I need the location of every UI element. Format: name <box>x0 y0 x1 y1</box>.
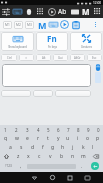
button[interactable]: Run macro <box>59 19 70 30</box>
staticText: Ab <box>58 7 67 16</box>
button[interactable]: Clipboard <box>70 19 81 30</box>
button[interactable]: q <box>0 134 11 143</box>
staticText: g <box>51 144 55 151</box>
button[interactable]: 2 <box>11 126 22 134</box>
staticText: e <box>26 135 29 142</box>
button[interactable]: Recent apps <box>61 172 79 183</box>
button[interactable]: 8 <box>73 126 83 134</box>
button[interactable]: b <box>56 152 67 161</box>
button[interactable]: g <box>48 143 58 152</box>
button[interactable]: s <box>16 143 27 152</box>
staticText: i <box>77 135 79 142</box>
button[interactable]: r <box>33 134 43 143</box>
button[interactable]: Alt <box>36 54 51 61</box>
button[interactable]: k <box>78 143 88 152</box>
button[interactable]: More options <box>90 19 101 30</box>
button[interactable]: Numeric pad <box>35 6 46 17</box>
staticText: Ctrl <box>7 56 12 60</box>
staticText: r <box>37 135 40 142</box>
staticText: t <box>47 135 49 142</box>
button[interactable]: 6 <box>53 126 63 134</box>
button[interactable]: Macro <box>37 19 48 30</box>
button[interactable]: Text input <box>2 64 91 87</box>
button[interactable]: AltGr <box>70 54 85 61</box>
staticText: j <box>72 144 74 151</box>
button[interactable] <box>55 90 91 97</box>
button[interactable]: n <box>67 152 78 161</box>
button[interactable]: Keypad <box>92 6 103 17</box>
staticText: 2 <box>15 127 18 133</box>
button[interactable]: t <box>43 134 53 143</box>
button[interactable]: x <box>23 152 34 161</box>
button[interactable]: 3 <box>22 126 33 134</box>
button[interactable]: v <box>45 152 56 161</box>
button[interactable]: M2 <box>14 21 23 29</box>
button[interactable]: j <box>68 143 78 152</box>
staticText: o <box>86 135 90 142</box>
button[interactable]: ⇧ <box>19 54 34 61</box>
button[interactable]: ?123 <box>1 161 16 171</box>
button[interactable]: Text <box>57 6 68 17</box>
button[interactable]: Keyboard <box>48 19 59 30</box>
button[interactable]: Gestures <box>70 32 102 51</box>
staticText: ⇧ <box>25 56 28 59</box>
button[interactable]: z <box>13 152 23 161</box>
staticText: Gui <box>58 56 63 60</box>
button[interactable]: Enter <box>87 161 102 171</box>
staticText: Fn keys <box>48 45 57 49</box>
staticText: 4 <box>37 127 40 133</box>
button[interactable]: Ctrl <box>1 54 17 61</box>
button[interactable]: 4 <box>33 126 43 134</box>
button[interactable]: i <box>73 134 83 143</box>
button[interactable]: Screen <box>69 6 80 17</box>
button[interactable]: 5 <box>43 126 53 134</box>
button[interactable]: y <box>53 134 63 143</box>
button[interactable]: 0 <box>93 126 103 134</box>
button[interactable]: e <box>22 134 33 143</box>
button[interactable] <box>1 90 31 97</box>
button[interactable]: Home <box>43 172 61 183</box>
button[interactable]: Touchpad <box>93 62 102 89</box>
button[interactable]: a <box>5 143 16 152</box>
button[interactable]: . <box>77 161 87 171</box>
button[interactable]: m <box>78 152 89 161</box>
button[interactable]: l <box>88 143 98 152</box>
button[interactable]: d <box>27 143 38 152</box>
button[interactable]: Gui <box>53 54 68 61</box>
button[interactable]: f <box>38 143 48 152</box>
button[interactable]: Fn <box>36 32 68 51</box>
staticText: h <box>61 144 65 151</box>
button[interactable] <box>33 90 53 97</box>
button[interactable]: M3 <box>25 21 34 29</box>
button[interactable]: w <box>11 134 22 143</box>
staticText: Esc <box>92 56 97 60</box>
button[interactable]: M1 <box>3 21 12 29</box>
button[interactable]: Settings sliders <box>0 6 11 17</box>
staticText: ?123 <box>5 164 12 168</box>
button[interactable]: c <box>34 152 45 161</box>
button[interactable]: h <box>58 143 68 152</box>
staticText: AltGr <box>74 56 81 60</box>
button[interactable]: Esc <box>87 54 102 61</box>
button[interactable]: o <box>83 134 93 143</box>
button[interactable]: Keyboard <box>12 6 23 17</box>
button[interactable]: Switch keyboard <box>79 172 96 183</box>
staticText: M3 <box>27 23 32 27</box>
button[interactable]: 9 <box>83 126 93 134</box>
staticText: . <box>81 163 83 169</box>
button[interactable]: Media controls <box>46 6 57 17</box>
button[interactable]: 7 <box>63 126 73 134</box>
button[interactable]: Show keyboard <box>1 32 34 51</box>
button[interactable]: Shift <box>0 152 13 161</box>
button[interactable]: 1 <box>0 126 11 134</box>
button[interactable]: Back <box>25 172 43 183</box>
staticText: s <box>20 144 23 151</box>
button[interactable]: Mouse <box>23 6 34 17</box>
button[interactable]: Macros <box>80 6 91 17</box>
button[interactable]: Backspace <box>89 152 103 161</box>
button[interactable]: p <box>93 134 103 143</box>
button[interactable]: , <box>16 161 26 171</box>
button[interactable]: u <box>63 134 73 143</box>
staticText: Show keyboard <box>8 45 27 49</box>
